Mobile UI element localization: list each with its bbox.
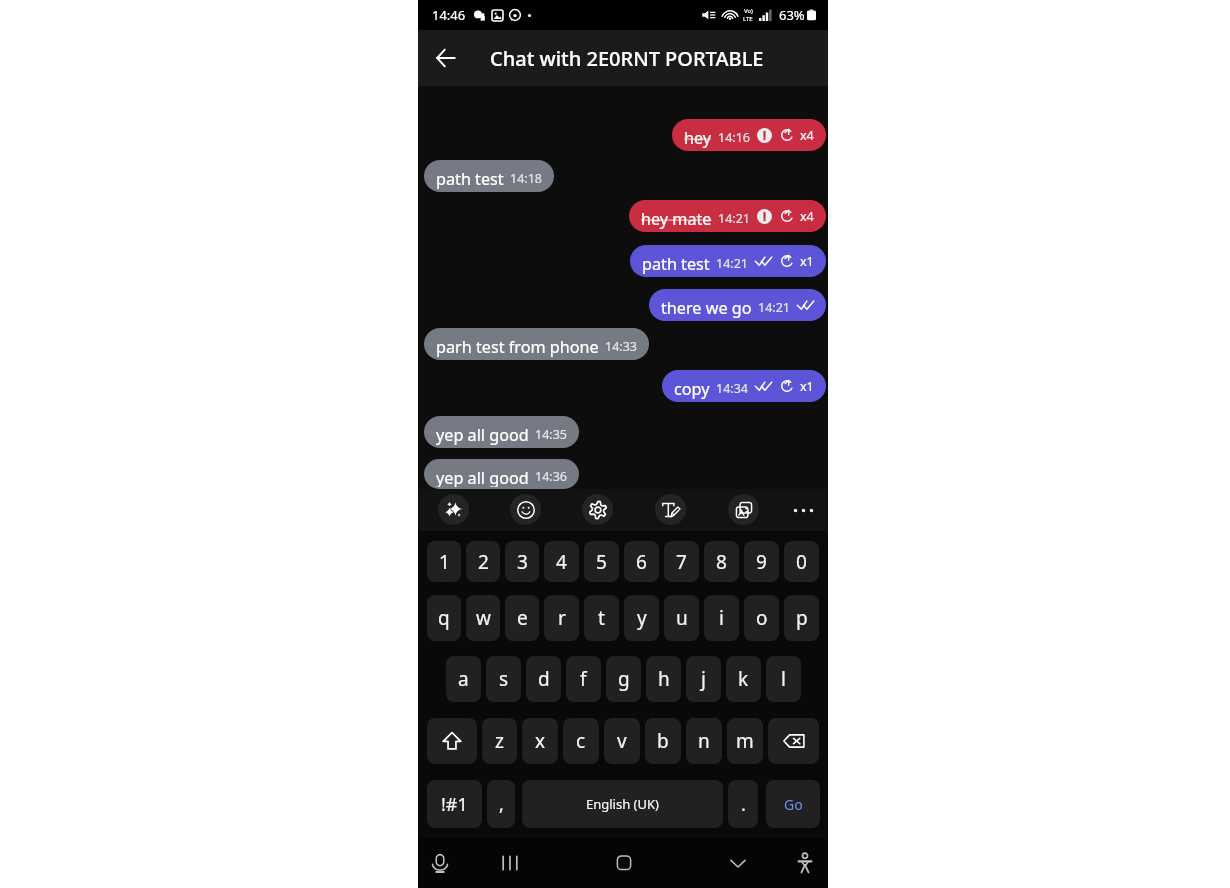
- button[interactable]: Back: [418, 30, 474, 86]
- button[interactable]: parh test from phone: [424, 328, 649, 360]
- button[interactable]: path test: [630, 245, 826, 277]
- button[interactable]: l: [766, 656, 801, 702]
- button[interactable]: AI assist: [438, 494, 469, 525]
- staticText: hey mate: [641, 208, 712, 230]
- staticText: n: [698, 728, 710, 754]
- button[interactable]: Accessibility: [783, 841, 827, 885]
- button[interactable]: 2: [466, 541, 500, 582]
- button[interactable]: Hide keyboard: [716, 841, 760, 885]
- button[interactable]: yep all good: [424, 459, 579, 489]
- button[interactable]: x: [522, 718, 558, 764]
- staticText: c: [576, 728, 586, 754]
- button[interactable]: o: [744, 595, 779, 641]
- staticText: English (UK): [586, 795, 659, 813]
- button[interactable]: Translate: [728, 494, 759, 525]
- button[interactable]: 9: [744, 541, 779, 582]
- button[interactable]: ,: [487, 780, 515, 828]
- staticText: 5: [596, 549, 607, 575]
- button[interactable]: v: [604, 718, 640, 764]
- button[interactable]: u: [664, 595, 699, 641]
- staticText: t: [598, 605, 605, 631]
- button[interactable]: y: [624, 595, 659, 641]
- staticText: 14:21: [758, 299, 790, 316]
- button[interactable]: d: [526, 656, 561, 702]
- staticText: y: [637, 605, 647, 631]
- staticText: w: [476, 605, 491, 631]
- button[interactable]: Emoji: [510, 494, 541, 525]
- button[interactable]: 6: [624, 541, 659, 582]
- button[interactable]: hey mate: [629, 200, 826, 232]
- staticText: x4: [800, 127, 814, 144]
- staticText: r: [558, 605, 566, 631]
- button[interactable]: p: [784, 595, 819, 641]
- button[interactable]: a: [446, 656, 481, 702]
- staticText: ,: [499, 792, 504, 817]
- button[interactable]: r: [544, 595, 579, 641]
- button[interactable]: 3: [505, 541, 539, 582]
- staticText: g: [618, 666, 630, 692]
- staticText: 14:21: [716, 255, 748, 272]
- staticText: 1: [439, 549, 450, 575]
- button[interactable]: f: [566, 656, 601, 702]
- staticText: copy: [674, 378, 710, 400]
- button[interactable]: w: [466, 595, 500, 641]
- button[interactable]: c: [563, 718, 599, 764]
- button[interactable]: Home: [602, 841, 646, 885]
- button[interactable]: copy: [662, 370, 826, 402]
- staticText: 63%: [779, 6, 805, 24]
- button[interactable]: e: [505, 595, 539, 641]
- staticText: 14:33: [605, 338, 637, 355]
- button[interactable]: k: [726, 656, 761, 702]
- button[interactable]: 8: [704, 541, 739, 582]
- button[interactable]: path test: [424, 160, 554, 192]
- staticText: 6: [636, 549, 647, 575]
- button[interactable]: q: [427, 595, 461, 641]
- staticText: 0: [796, 549, 807, 575]
- button[interactable]: More options: [787, 494, 819, 526]
- staticText: a: [458, 666, 469, 692]
- staticText: 14:21: [718, 210, 750, 227]
- button[interactable]: Recents: [488, 841, 532, 885]
- button[interactable]: hey: [672, 119, 826, 151]
- button[interactable]: there we go: [649, 289, 826, 321]
- button[interactable]: 4: [544, 541, 579, 582]
- button[interactable]: Backspace: [768, 718, 819, 764]
- staticText: x: [535, 728, 546, 754]
- button[interactable]: h: [646, 656, 681, 702]
- button[interactable]: s: [486, 656, 521, 702]
- staticText: .: [741, 792, 746, 817]
- staticText: 9: [756, 549, 767, 575]
- button[interactable]: i: [704, 595, 739, 641]
- button[interactable]: Voice input: [418, 841, 462, 885]
- button[interactable]: t: [584, 595, 619, 641]
- button[interactable]: 1: [427, 541, 461, 582]
- staticText: 8: [716, 549, 727, 575]
- button[interactable]: z: [482, 718, 517, 764]
- staticText: hey: [684, 127, 712, 149]
- button[interactable]: 5: [584, 541, 619, 582]
- button[interactable]: 7: [664, 541, 699, 582]
- button[interactable]: !#1: [427, 780, 482, 828]
- staticText: yep all good: [436, 467, 529, 487]
- button[interactable]: n: [686, 718, 722, 764]
- button[interactable]: g: [606, 656, 641, 702]
- button[interactable]: English (UK): [522, 780, 723, 828]
- button[interactable]: Handwriting: [655, 494, 686, 525]
- staticText: 14:18: [510, 170, 542, 187]
- button[interactable]: yep all good: [424, 416, 579, 448]
- button[interactable]: b: [645, 718, 681, 764]
- staticText: l: [781, 666, 786, 692]
- staticText: 2: [478, 549, 489, 575]
- button[interactable]: Shift: [427, 718, 477, 764]
- staticText: f: [580, 666, 587, 692]
- button[interactable]: .: [728, 780, 758, 828]
- staticText: parh test from phone: [436, 336, 599, 358]
- staticText: m: [736, 728, 754, 754]
- staticText: Go: [784, 795, 803, 814]
- button[interactable]: Settings: [582, 494, 613, 525]
- button[interactable]: Go: [766, 780, 820, 828]
- button[interactable]: m: [727, 718, 763, 764]
- button[interactable]: j: [686, 656, 721, 702]
- staticText: Chat with 2E0RNT PORTABLE: [490, 45, 764, 72]
- button[interactable]: 0: [784, 541, 819, 582]
